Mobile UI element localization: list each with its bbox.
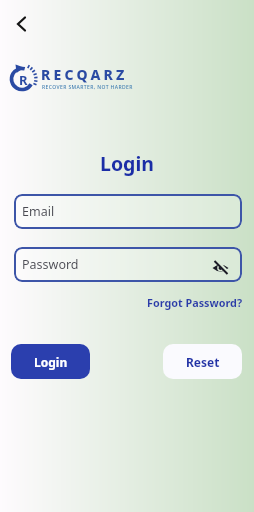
staticText: Email — [22, 203, 55, 220]
staticText: Login — [100, 150, 154, 177]
button[interactable] — [8, 11, 34, 37]
staticText: RECQARZ — [41, 65, 128, 84]
button[interactable]: Reset — [163, 344, 242, 379]
staticText: R — [19, 71, 28, 89]
button[interactable]: Password — [14, 247, 242, 282]
staticText: Reset — [186, 354, 220, 370]
staticText: Login — [34, 354, 68, 370]
button[interactable]: Forgot Password? — [147, 295, 243, 310]
button[interactable]: Email — [14, 194, 242, 229]
button[interactable]: Login — [11, 344, 90, 379]
staticText: Password — [22, 256, 79, 273]
staticText: RECOVER SMARTER, NOT HARDER — [42, 84, 133, 91]
